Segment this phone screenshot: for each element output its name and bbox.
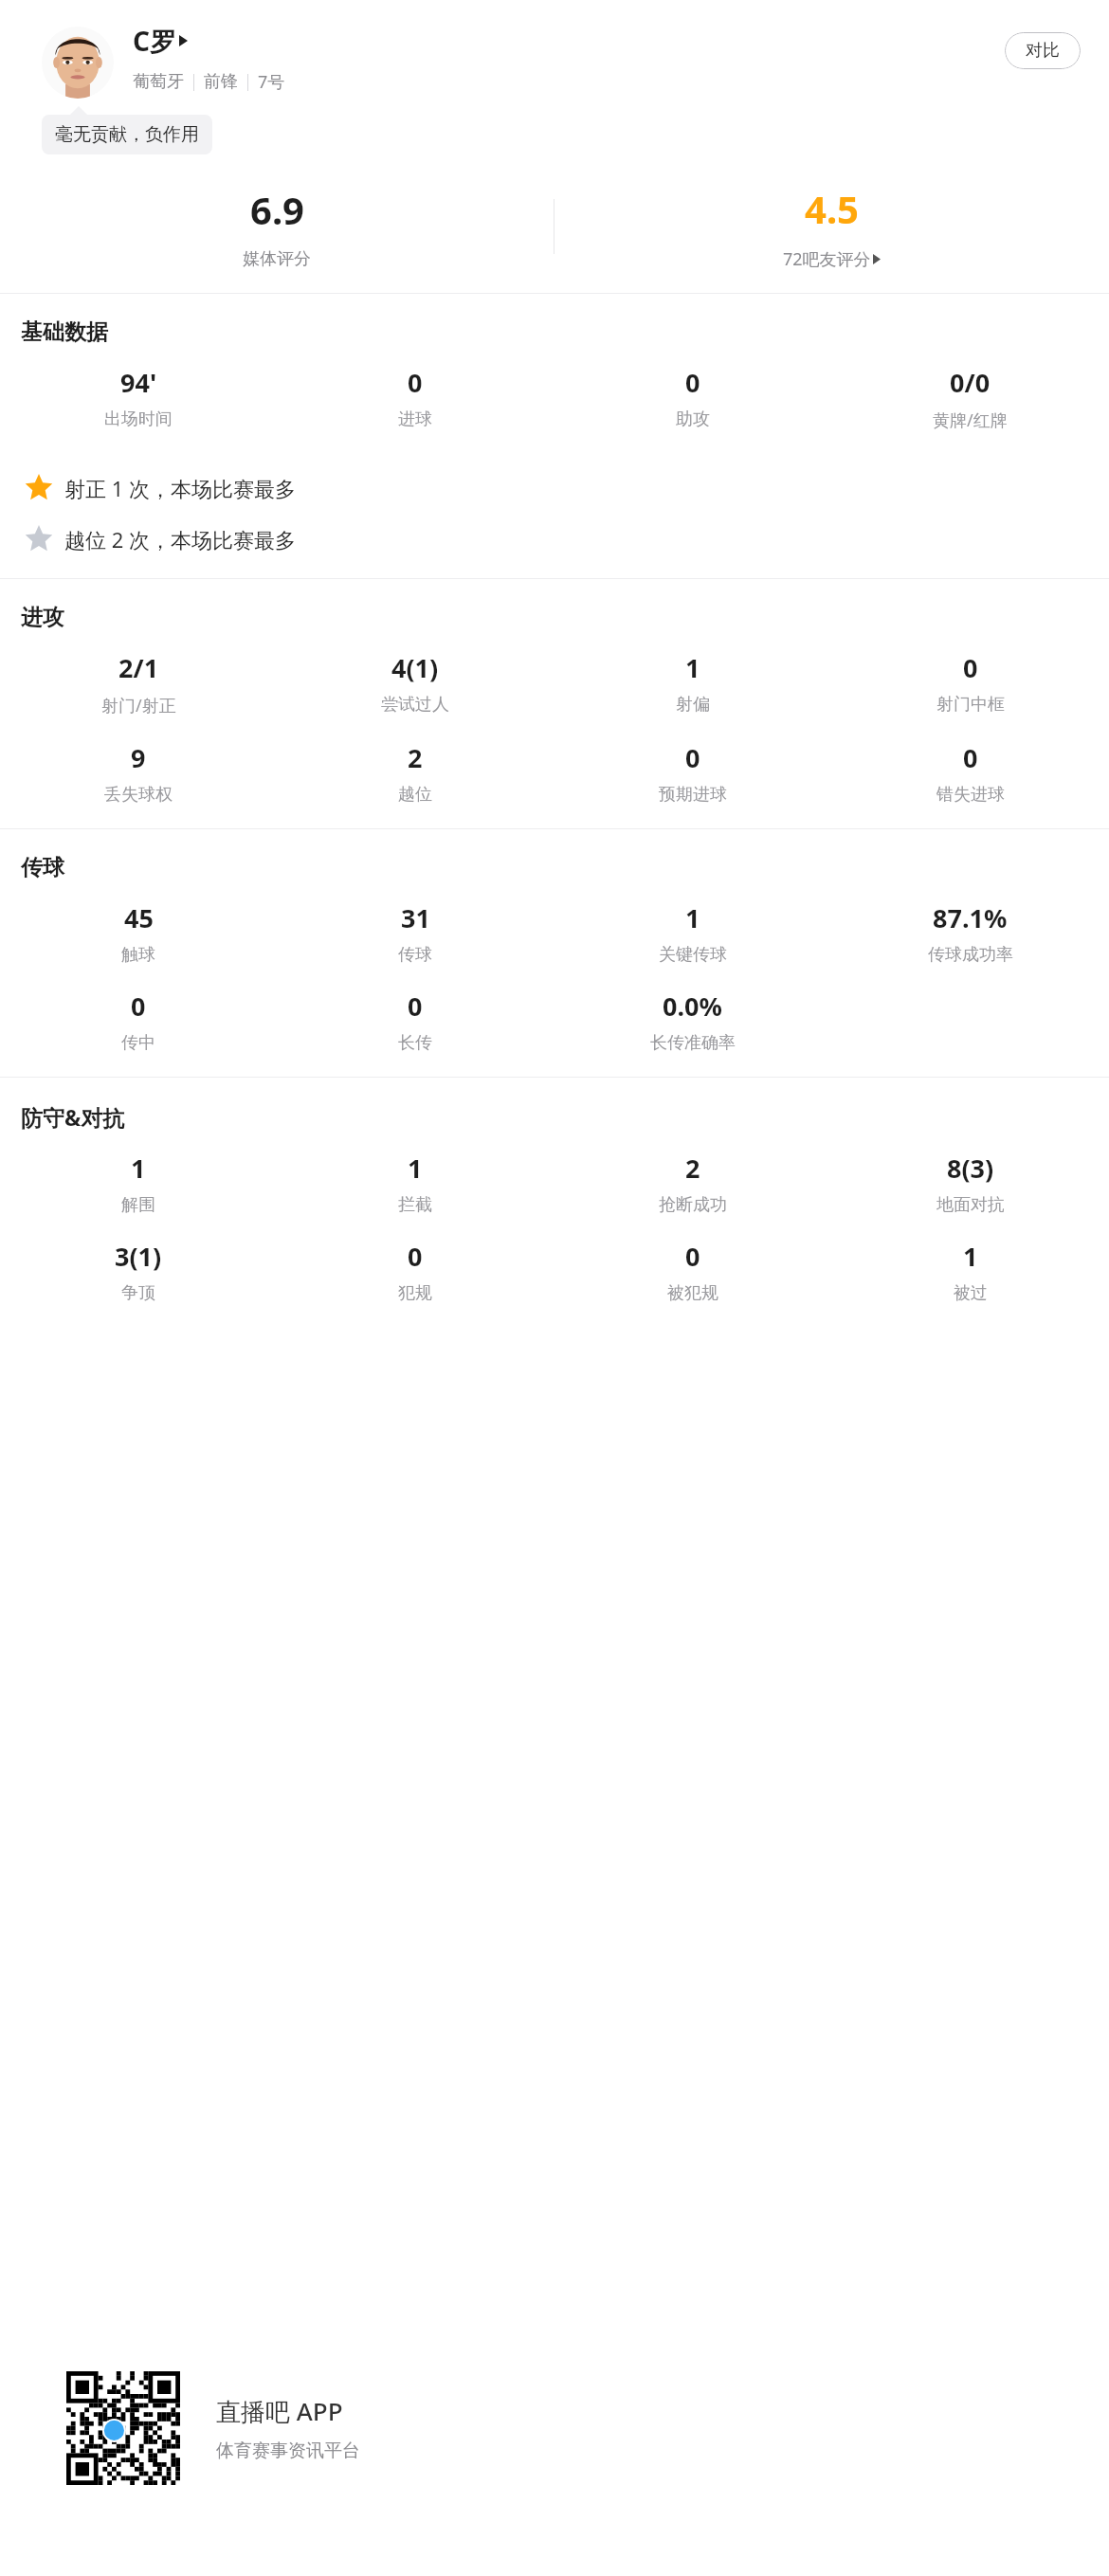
staticText: 3(1) <box>115 1239 162 1274</box>
staticText: 4.5 <box>805 183 859 234</box>
staticText: 0 <box>685 1239 700 1274</box>
staticText: 进球 <box>398 408 432 430</box>
staticText: 1 <box>408 1151 423 1186</box>
staticText: 6.9 <box>250 184 304 235</box>
staticText: 抢断成功 <box>659 1194 727 1216</box>
staticText: 94' <box>120 365 157 400</box>
staticText: 0/0 <box>950 365 991 400</box>
staticText: 7号 <box>258 70 285 94</box>
staticText: 解围 <box>121 1194 155 1216</box>
staticText: 预期进球 <box>659 784 727 806</box>
button[interactable]: C罗 <box>133 23 188 59</box>
staticText: 被过 <box>954 1282 988 1304</box>
staticText: 9 <box>131 740 146 775</box>
staticText: 2/1 <box>118 650 159 685</box>
staticText: 射偏 <box>676 694 710 716</box>
staticText: 0 <box>963 650 978 685</box>
staticText: 射门中框 <box>936 694 1005 716</box>
staticText: 0 <box>685 740 700 775</box>
staticText: 拦截 <box>398 1194 432 1216</box>
staticText: 触球 <box>121 944 155 966</box>
button[interactable]: 射正 1 次，本场比赛最多 <box>0 463 1109 514</box>
staticText: 媒体评分 <box>243 248 311 270</box>
staticText: 8(3) <box>947 1151 994 1186</box>
button[interactable]: 对比 <box>1005 32 1081 69</box>
staticText: 毫无贡献，负作用 <box>55 123 199 146</box>
staticText: 对比 <box>1026 40 1060 62</box>
button[interactable]: 毫无贡献，负作用 <box>42 115 212 154</box>
staticText: 越位 2 次，本场比赛最多 <box>64 525 297 553</box>
button[interactable]: 越位 2 次，本场比赛最多 <box>0 514 1109 565</box>
staticText: 争顶 <box>121 1282 155 1304</box>
staticText: 地面对抗 <box>936 1194 1005 1216</box>
staticText: 基础数据 <box>21 318 108 346</box>
staticText: 葡萄牙 <box>133 71 184 93</box>
staticText: 关键传球 <box>659 944 727 966</box>
staticText: 体育赛事资讯平台 <box>216 2440 360 2462</box>
staticText: 射门/射正 <box>101 694 176 717</box>
staticText: 传球 <box>398 944 432 966</box>
staticText: 直播吧 APP <box>216 2394 343 2428</box>
staticText: 尝试过人 <box>381 694 449 716</box>
staticText: 1 <box>685 900 700 935</box>
staticText: 72吧友评分 <box>783 247 871 271</box>
staticText: 45 <box>124 900 154 935</box>
staticText: 助攻 <box>676 408 710 430</box>
staticText: 0 <box>131 989 146 1024</box>
staticText: 犯规 <box>398 1282 432 1304</box>
staticText: 4(1) <box>391 650 439 685</box>
staticText: 0 <box>408 989 423 1024</box>
staticText: 出场时间 <box>104 408 173 430</box>
staticText: 被犯规 <box>667 1282 718 1304</box>
staticText: 传中 <box>121 1032 155 1054</box>
staticText: 2 <box>685 1151 700 1186</box>
staticText: 31 <box>401 900 430 935</box>
staticText: 错失进球 <box>936 784 1005 806</box>
button[interactable]: 4.5 <box>554 183 1109 271</box>
staticText: 1 <box>131 1151 146 1186</box>
staticText: 0 <box>408 1239 423 1274</box>
staticText: 87.1% <box>933 900 1008 935</box>
staticText: 黄牌/红牌 <box>933 408 1008 432</box>
staticText: 丢失球权 <box>104 784 173 806</box>
staticText: 防守&对抗 <box>21 1102 125 1132</box>
staticText: 2 <box>408 740 423 775</box>
staticText: 1 <box>685 650 700 685</box>
staticText: 0 <box>685 365 700 400</box>
staticText: 0.0% <box>663 989 722 1024</box>
staticText: 射正 1 次，本场比赛最多 <box>64 474 297 502</box>
staticText: 长传 <box>398 1032 432 1054</box>
button[interactable]: Player avatar <box>42 27 114 99</box>
staticText: C罗 <box>133 23 176 59</box>
staticText: 前锋 <box>204 71 238 93</box>
button[interactable]: 6.9 <box>0 184 554 270</box>
staticText: 传球 <box>21 854 64 881</box>
staticText: 越位 <box>398 784 432 806</box>
staticText: 传球成功率 <box>928 944 1013 966</box>
staticText: 长传准确率 <box>650 1032 736 1054</box>
staticText: 0 <box>963 740 978 775</box>
staticText: 进攻 <box>21 604 64 631</box>
staticText: 1 <box>963 1239 978 1274</box>
staticText: 0 <box>408 365 423 400</box>
